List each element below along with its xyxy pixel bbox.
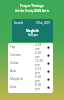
staticText: Asar bbox=[10, 69, 35, 73]
staticText: Isha bbox=[10, 85, 35, 89]
button[interactable]: Sunrise bbox=[8, 51, 53, 59]
button[interactable]: Toggle azan alert bbox=[46, 61, 51, 66]
button[interactable]: Isha bbox=[8, 83, 53, 91]
staticText: Maghrib bbox=[26, 29, 39, 33]
staticText: Get the Timely AZAN Alerts bbox=[0, 9, 64, 13]
staticText: 8:05 pm bbox=[35, 83, 46, 91]
button[interactable]: Toggle azan alert bbox=[46, 45, 51, 50]
staticText: Zuhar bbox=[10, 61, 35, 65]
staticText: 4:15 pm bbox=[35, 67, 46, 75]
button[interactable]: Toggle azan alert bbox=[46, 69, 51, 74]
staticText: Fajr bbox=[10, 45, 35, 49]
staticText: 9 Dec, 2021 bbox=[36, 21, 51, 25]
staticText: 6:45 pm bbox=[28, 33, 38, 37]
staticText: Prayer Timings bbox=[0, 4, 64, 8]
button[interactable]: Toggle azan alert bbox=[46, 53, 51, 58]
button[interactable]: Toggle azan alert bbox=[46, 85, 51, 90]
staticText: Karachi bbox=[14, 21, 24, 25]
button[interactable]: Maghrib bbox=[8, 75, 53, 83]
staticText: Maghrib bbox=[10, 77, 35, 81]
staticText: Sunrise bbox=[10, 53, 35, 57]
staticText: 12:30 pm bbox=[35, 59, 46, 67]
button[interactable]: Asar bbox=[8, 67, 53, 75]
button[interactable]: Fajr bbox=[8, 43, 53, 51]
button[interactable]: Karachi bbox=[12, 19, 53, 42]
staticText: 4:58 am bbox=[35, 43, 46, 51]
staticText: 6:20 am bbox=[35, 51, 46, 59]
button[interactable]: Zuhar bbox=[8, 59, 53, 67]
staticText: 6:45 pm bbox=[35, 75, 46, 83]
button[interactable]: Toggle azan alert bbox=[46, 77, 51, 82]
